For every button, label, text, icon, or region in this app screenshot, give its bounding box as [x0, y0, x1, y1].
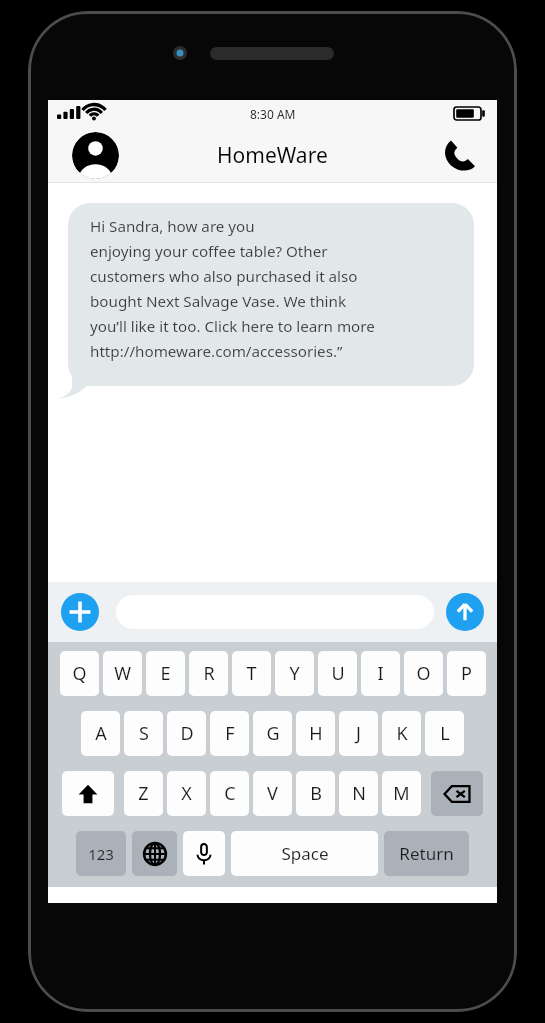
button[interactable]: 123	[76, 831, 126, 876]
staticText: V	[267, 781, 278, 806]
button[interactable]: H	[296, 711, 335, 756]
button[interactable]: Call	[439, 135, 479, 175]
staticText: Hi Sandra, how are you enjoying your cof…	[90, 216, 375, 362]
button[interactable]: T	[232, 651, 271, 696]
staticText: O	[416, 661, 431, 686]
staticText: T	[246, 661, 257, 686]
staticText: B	[310, 781, 322, 806]
staticText: A	[95, 721, 107, 746]
staticText: Q	[72, 661, 87, 686]
staticText: Return	[399, 842, 454, 865]
button[interactable]: Change keyboard language	[132, 831, 177, 876]
staticText: P	[461, 661, 472, 686]
staticText: D	[180, 721, 194, 746]
button[interactable]: Add attachment	[61, 593, 99, 631]
button[interactable]: D	[167, 711, 206, 756]
staticText: H	[309, 721, 323, 746]
staticText: Space	[281, 842, 329, 865]
button[interactable]: Q	[60, 651, 99, 696]
staticText: G	[266, 721, 280, 746]
button[interactable]: O	[404, 651, 443, 696]
staticText: L	[440, 721, 450, 746]
staticText: X	[181, 781, 192, 806]
staticText: R	[203, 661, 215, 686]
button[interactable]: Contact avatar	[72, 132, 119, 179]
button[interactable]: Shift	[62, 771, 114, 816]
button[interactable]: Backspace	[431, 771, 483, 816]
button[interactable]: R	[189, 651, 228, 696]
button[interactable]: Z	[124, 771, 163, 816]
staticText: K	[396, 721, 408, 746]
staticText: N	[352, 781, 366, 806]
button[interactable]: M	[382, 771, 421, 816]
staticText: J	[356, 721, 361, 746]
button[interactable]: Dictate	[183, 831, 225, 876]
staticText: F	[225, 721, 235, 746]
button[interactable]: V	[253, 771, 292, 816]
staticText: U	[331, 661, 345, 686]
staticText: 8:30 AM	[250, 106, 296, 122]
button[interactable]: L	[425, 711, 464, 756]
button[interactable]: C	[210, 771, 249, 816]
button[interactable]: N	[339, 771, 378, 816]
button[interactable]: F	[210, 711, 249, 756]
button[interactable]: Return	[384, 831, 469, 876]
button[interactable]: A	[81, 711, 120, 756]
button[interactable]: K	[382, 711, 421, 756]
button[interactable]: Space	[231, 831, 378, 876]
button[interactable]: W	[103, 651, 142, 696]
staticText: I	[377, 661, 384, 686]
button[interactable]: S	[124, 711, 163, 756]
button[interactable]: P	[447, 651, 486, 696]
button[interactable]: G	[253, 711, 292, 756]
button[interactable]: B	[296, 771, 335, 816]
button[interactable]: J	[339, 711, 378, 756]
button[interactable]: I	[361, 651, 400, 696]
button[interactable]: X	[167, 771, 206, 816]
staticText: Y	[289, 661, 300, 686]
button[interactable]: E	[146, 651, 185, 696]
button[interactable]: Send	[446, 593, 484, 631]
button[interactable]: Y	[275, 651, 314, 696]
staticText: Z	[138, 781, 149, 806]
button[interactable]: U	[318, 651, 357, 696]
staticText: W	[114, 661, 131, 686]
staticText: E	[160, 661, 171, 686]
staticText: S	[139, 721, 149, 746]
staticText: M	[393, 781, 410, 806]
staticText: HomeWare	[217, 141, 328, 170]
staticText: C	[224, 781, 236, 806]
staticText: 123	[88, 844, 114, 864]
